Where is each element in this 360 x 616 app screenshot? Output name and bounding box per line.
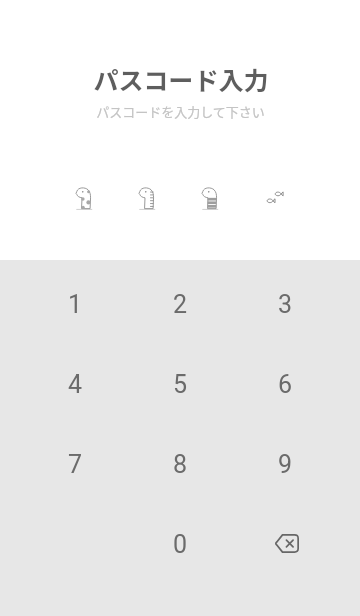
button[interactable]: Delete: [240, 504, 360, 584]
button[interactable]: 5: [120, 344, 240, 424]
staticText: パスコード入力: [93, 61, 269, 97]
staticText: パスコードを入力して下さい: [96, 102, 265, 121]
staticText: 7: [68, 450, 83, 479]
button[interactable]: 8: [120, 424, 240, 504]
staticText: 9: [278, 450, 293, 479]
staticText: 6: [278, 370, 293, 399]
button[interactable]: 9: [240, 424, 360, 504]
other: Delete: [256, 513, 316, 573]
button[interactable]: 3: [240, 264, 360, 344]
button[interactable]: 2: [120, 264, 240, 344]
staticText: 4: [68, 370, 83, 399]
staticText: 1: [68, 290, 83, 319]
button[interactable]: 6: [240, 344, 360, 424]
button[interactable]: 7: [0, 424, 120, 504]
staticText: 2: [173, 290, 188, 319]
button[interactable]: 1: [0, 264, 120, 344]
button[interactable]: 0: [120, 504, 240, 584]
staticText: 8: [173, 450, 188, 479]
staticText: 0: [173, 530, 188, 559]
button[interactable]: 4: [0, 344, 120, 424]
staticText: 3: [278, 290, 293, 319]
staticText: 5: [173, 370, 188, 399]
